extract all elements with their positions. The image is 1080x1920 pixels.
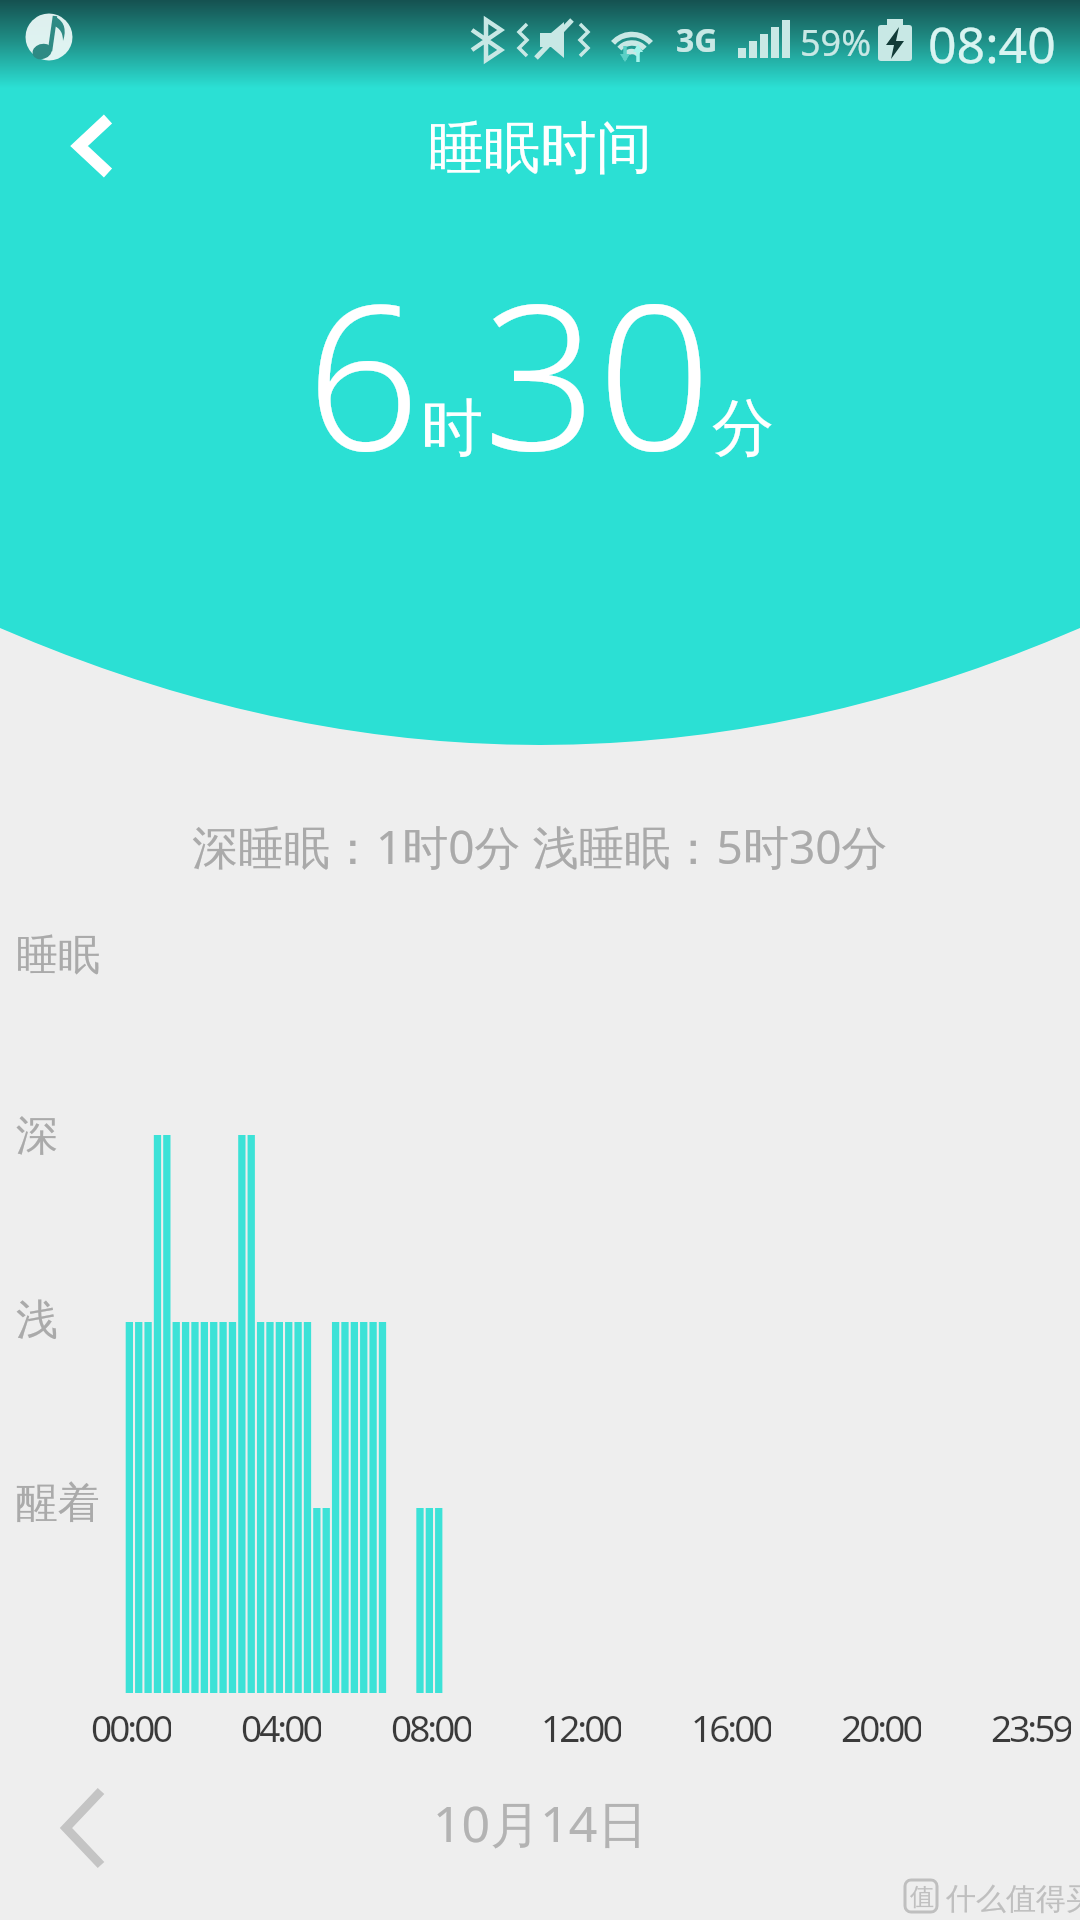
staticText: 睡眠 (16, 929, 100, 982)
staticText: 睡眠时间 (428, 113, 652, 184)
button[interactable] (36, 1775, 136, 1881)
staticText: 浅 (16, 1294, 58, 1347)
staticText: 20:00 (841, 1702, 921, 1748)
staticText: 值 (910, 1882, 934, 1912)
staticText: 深 (16, 1110, 58, 1163)
staticText: 时 (421, 389, 483, 467)
button[interactable] (40, 100, 150, 192)
staticText: 12:00 (541, 1702, 621, 1748)
staticText: 醒着 (16, 1477, 100, 1530)
staticText: 04:00 (241, 1702, 321, 1748)
staticText: 什么值得买 (946, 1880, 1080, 1918)
staticText: 6 (306, 236, 421, 508)
staticText: 30 (483, 236, 712, 508)
staticText: 深睡眠：1时0分 浅睡眠：5时30分 (192, 815, 888, 875)
staticText: 00:00 (91, 1702, 171, 1748)
staticText: 59% (800, 18, 872, 67)
staticText: 08:00 (391, 1702, 471, 1748)
staticText: 16:00 (691, 1702, 771, 1748)
staticText: 10月14日 (433, 1789, 648, 1855)
staticText: 23:59 (991, 1702, 1071, 1748)
staticText: 08:40 (928, 10, 1056, 78)
staticText: 3G (676, 18, 718, 62)
staticText: 分 (712, 389, 774, 467)
